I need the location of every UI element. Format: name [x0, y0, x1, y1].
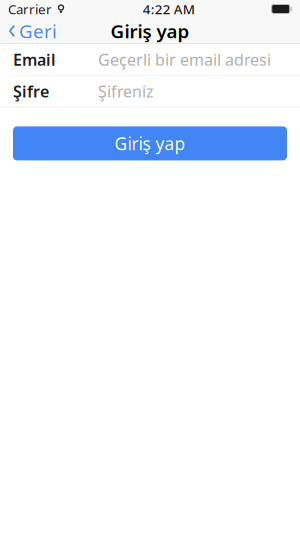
staticText: Geri: [19, 19, 57, 43]
staticText: Giriş yap: [110, 19, 189, 43]
staticText: Şifreniz: [98, 81, 154, 102]
staticText: 4:22 AM: [143, 0, 195, 18]
button[interactable]: Giriş yap: [13, 126, 287, 160]
staticText: Email: [13, 49, 56, 70]
staticText: Giriş yap: [114, 132, 185, 155]
staticText: Carrier: [8, 0, 52, 18]
button[interactable]: Geri: [0, 15, 57, 47]
staticText: Şifre: [13, 81, 49, 102]
staticText: Geçerli bir email adresi: [98, 49, 271, 70]
